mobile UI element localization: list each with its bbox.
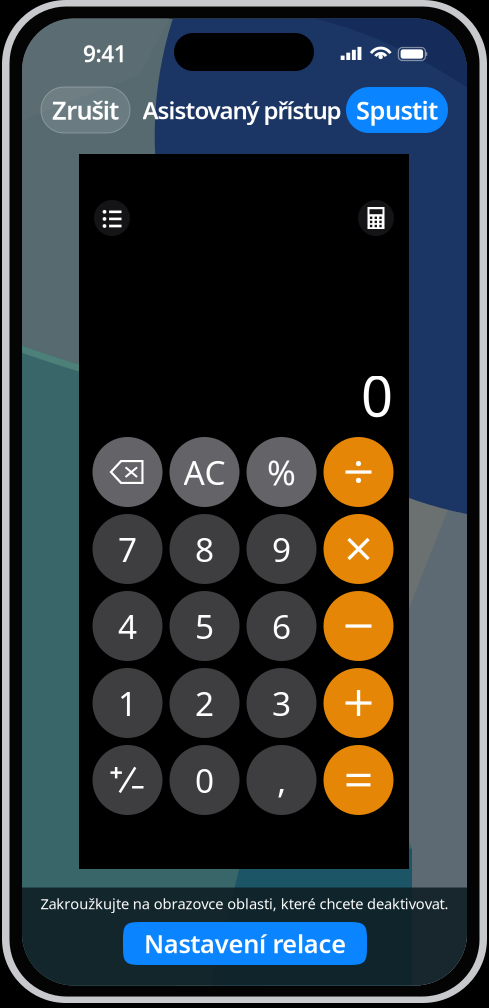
button[interactable]: 3 [246,668,316,738]
button[interactable]: 1 [92,668,162,738]
button[interactable]: AC [169,437,239,507]
staticText: 3 [272,681,291,725]
staticText: % [267,449,296,495]
button[interactable]: Delete [92,437,162,507]
button[interactable]: 9 [246,514,316,584]
staticText: 2 [195,681,214,725]
staticText: Spustit [356,93,438,127]
staticText: 1 [118,681,137,725]
button[interactable]: Zrušit [41,87,130,133]
staticText: 0 [195,758,214,802]
button[interactable]: 4 [92,591,162,661]
button[interactable]: Divide [323,437,393,507]
button[interactable]: Plus minus [92,745,162,815]
staticText: AC [183,450,225,494]
button[interactable]: History [94,200,130,236]
staticText: 0 [361,358,393,432]
button[interactable]: Spustit [346,87,448,133]
staticText: Zrušit [52,93,119,127]
staticText: 4 [118,604,137,648]
button[interactable]: 6 [246,591,316,661]
staticText: Zakroužkujte na obrazovce oblasti, které… [40,894,449,913]
button[interactable]: , [246,745,316,815]
button[interactable]: 8 [169,514,239,584]
button[interactable]: 7 [92,514,162,584]
staticText: Nastavení relace [144,927,346,960]
button[interactable]: 0 [169,745,239,815]
button[interactable]: 2 [169,668,239,738]
staticText: 9:41 [83,38,127,68]
staticText: , [277,757,286,803]
staticText: 8 [195,527,214,571]
button[interactable]: % [246,437,316,507]
staticText: Asistovaný přístup [142,94,341,126]
staticText: 5 [195,604,214,648]
button[interactable]: Calculator type [358,200,394,236]
button[interactable]: Plus [323,668,393,738]
button[interactable]: Nastavení relace [123,922,367,965]
staticText: 6 [272,604,291,648]
staticText: 9 [272,527,291,571]
button[interactable]: Minus [323,591,393,661]
staticText: 7 [118,527,137,571]
button[interactable]: Multiply [323,514,393,584]
button[interactable]: 5 [169,591,239,661]
button[interactable]: Equals [323,745,393,815]
